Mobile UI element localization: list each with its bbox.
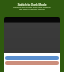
staticText: Reduce eye strain and save battery: [3, 6, 61, 9]
button[interactable]: [5, 61, 59, 65]
button[interactable]: [5, 56, 59, 60]
staticText: life with a darker theme: [3, 8, 61, 11]
staticText: Switch to Dark Mode: [4, 3, 60, 7]
